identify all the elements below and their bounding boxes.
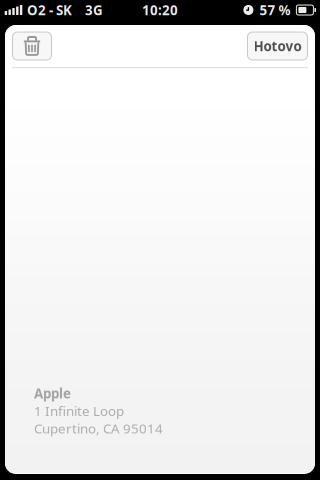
- staticText: 57 %: [259, 1, 290, 19]
- staticText: Apple: [34, 384, 71, 402]
- staticText: 1 Infinite Loop: [34, 402, 124, 420]
- button[interactable]: Delete: [12, 32, 51, 60]
- staticText: Cupertino, CA 95014: [34, 419, 163, 437]
- staticText: Hotovo: [253, 37, 301, 55]
- staticText: O2 - SK: [27, 1, 72, 19]
- button[interactable]: Hotovo: [247, 32, 307, 60]
- staticText: 10:20: [142, 1, 178, 19]
- staticText: 3G: [85, 1, 103, 19]
